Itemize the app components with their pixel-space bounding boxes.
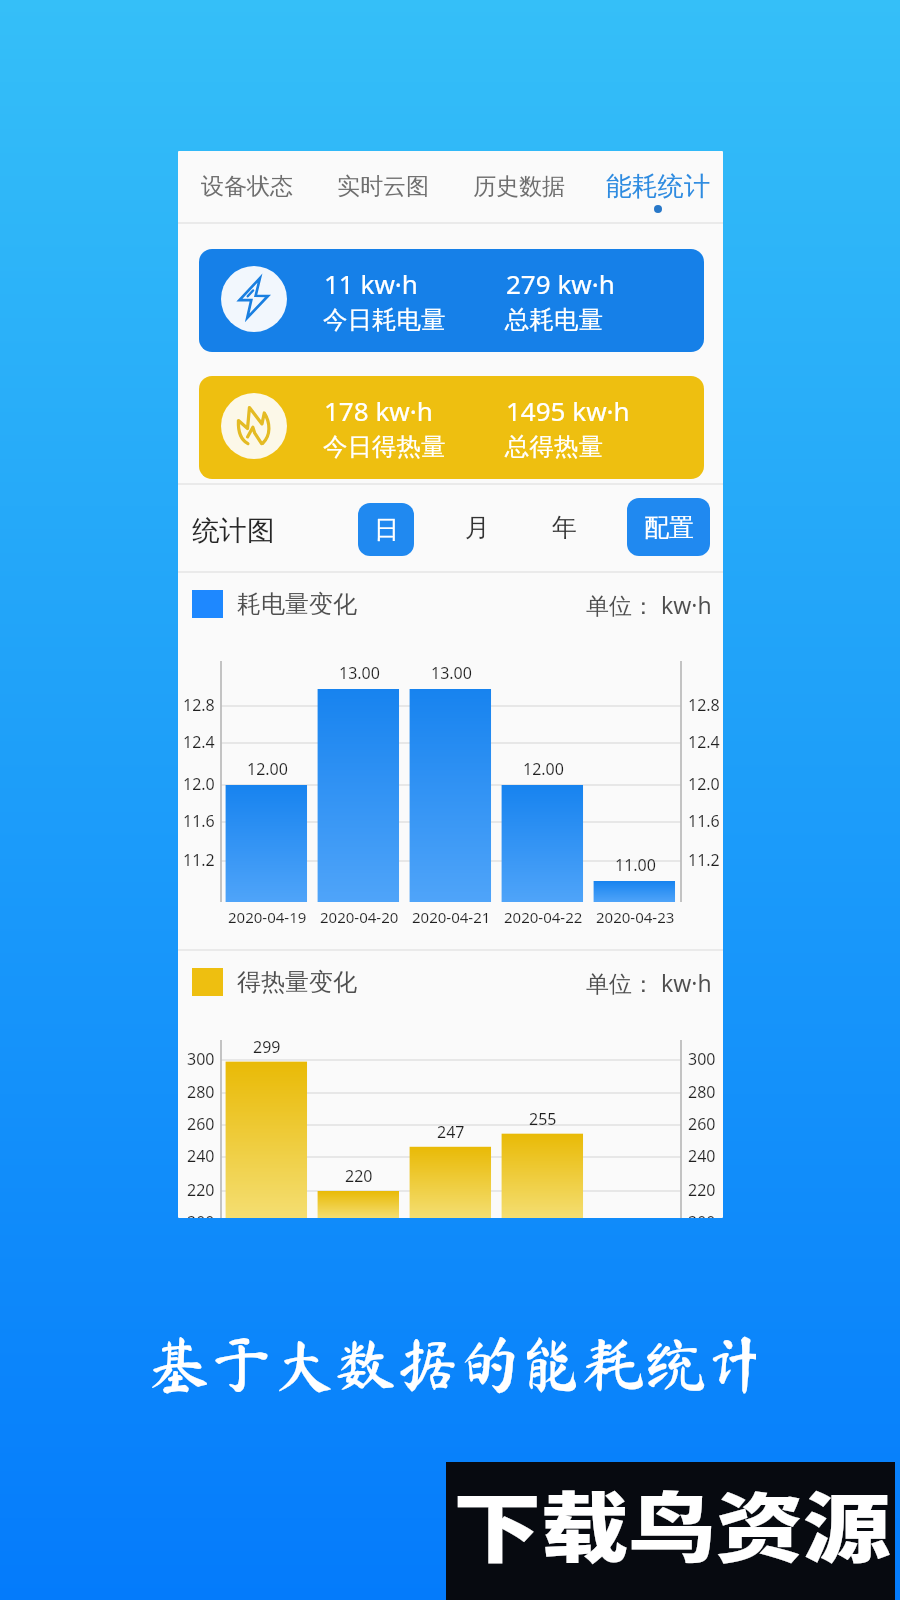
staticText: 299 — [253, 1036, 281, 1058]
other: Heat — [235, 405, 273, 447]
staticText: 11.2 — [688, 849, 720, 871]
staticText: 总耗电量 — [505, 304, 603, 335]
staticText: 11.6 — [183, 810, 215, 832]
staticText: 13.00 — [431, 662, 472, 684]
staticText: 单位： kw·h — [586, 967, 712, 998]
button[interactable]: 月 — [449, 501, 505, 554]
staticText: 2020-04-22 — [504, 907, 583, 927]
staticText: 11 kw·h — [324, 266, 418, 301]
staticText: 260 — [688, 1113, 716, 1135]
staticText: 178 kw·h — [324, 393, 433, 428]
staticText: 总得热量 — [505, 431, 603, 462]
staticText: 220 — [187, 1179, 215, 1201]
staticText: 月 — [465, 512, 490, 543]
staticText: 12.0 — [183, 773, 215, 795]
button[interactable]: 能耗统计 — [587, 151, 723, 222]
staticText: 2020-04-23 — [596, 907, 675, 927]
staticText: 200 — [187, 1211, 215, 1218]
staticText: 12.4 — [183, 731, 215, 753]
staticText: 统计图 — [192, 514, 275, 549]
staticText: 配置 — [644, 512, 694, 543]
button[interactable]: 实时云图 — [315, 151, 451, 222]
staticText: 300 — [688, 1048, 716, 1070]
staticText: 240 — [187, 1145, 215, 1167]
staticText: 12.8 — [688, 694, 720, 716]
staticText: 12.8 — [183, 694, 215, 716]
staticText: 11.2 — [183, 849, 215, 871]
staticText: 日 — [374, 514, 399, 545]
staticText: 200 — [688, 1211, 716, 1218]
button[interactable]: 年 — [536, 501, 592, 554]
staticText: 220 — [688, 1179, 716, 1201]
staticText: 11.00 — [615, 854, 656, 876]
staticText: 历史数据 — [473, 172, 565, 201]
button[interactable]: 历史数据 — [451, 151, 587, 222]
staticText: 今日耗电量 — [323, 304, 446, 335]
staticText: 年 — [552, 512, 577, 543]
staticText: 12.00 — [523, 758, 564, 780]
staticText: 300 — [187, 1048, 215, 1070]
staticText: 今日得热量 — [323, 431, 446, 462]
button[interactable]: Electricity — [199, 249, 704, 352]
staticText: 280 — [187, 1081, 215, 1103]
staticText: 11.6 — [688, 810, 720, 832]
staticText: 13.00 — [339, 662, 380, 684]
staticText: 设备状态 — [201, 172, 293, 201]
staticText: 260 — [187, 1113, 215, 1135]
staticText: 2020-04-19 — [228, 907, 307, 927]
staticText: 12.00 — [247, 758, 288, 780]
staticText: 12.0 — [688, 773, 720, 795]
staticText: 实时云图 — [337, 172, 429, 201]
staticText: 220 — [345, 1165, 373, 1187]
staticText: 247 — [437, 1121, 465, 1143]
staticText: 240 — [688, 1145, 716, 1167]
staticText: 基于大数据的能耗统计 — [148, 1332, 756, 1394]
staticText: 2020-04-21 — [412, 907, 491, 927]
other: Electricity — [235, 274, 273, 324]
button[interactable]: 配置 — [627, 498, 710, 556]
staticText: 255 — [529, 1108, 557, 1130]
staticText: 279 kw·h — [506, 266, 615, 301]
staticText: 单位： kw·h — [586, 589, 712, 620]
button[interactable]: 日 — [358, 503, 414, 556]
staticText: 2020-04-20 — [320, 907, 399, 927]
staticText: 12.4 — [688, 731, 720, 753]
staticText: 能耗统计 — [606, 170, 710, 203]
staticText: 280 — [688, 1081, 716, 1103]
staticText: 耗电量变化 — [237, 589, 357, 619]
staticText: 下载鸟资源 — [453, 1468, 890, 1578]
button[interactable]: Heat — [199, 376, 704, 479]
staticText: 1495 kw·h — [506, 393, 630, 428]
button[interactable]: 设备状态 — [178, 151, 315, 222]
staticText: 得热量变化 — [237, 967, 357, 997]
